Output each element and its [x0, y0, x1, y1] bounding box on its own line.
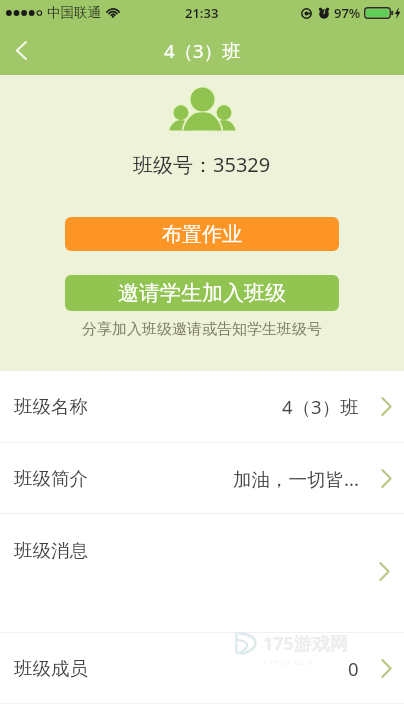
staticText: 21:33 [185, 4, 219, 22]
button[interactable]: 班级简介 [0, 443, 404, 513]
button[interactable]: 班级消息 [0, 514, 404, 632]
staticText: 4（3）班 [164, 38, 241, 63]
staticText: 175游戏网 [263, 631, 348, 656]
staticText: 97% [334, 4, 361, 22]
button[interactable]: 班级名称 [0, 371, 404, 442]
staticText: 班级简介 [14, 467, 88, 490]
staticText: 班级名称 [14, 395, 88, 418]
staticText: 中国联通 [47, 4, 101, 21]
staticText: 布置作业 [162, 222, 242, 247]
staticText: 1 7 5 y x . c o m [263, 658, 313, 668]
staticText: 邀请学生加入班级 [118, 280, 286, 306]
button[interactable]: Back [0, 25, 44, 75]
staticText: 班级消息 [14, 539, 88, 562]
staticText: 班级成员 [14, 657, 88, 680]
staticText: 班级号：35329 [133, 151, 271, 178]
button[interactable]: 布置作业 [65, 217, 339, 251]
button[interactable]: 班级成员 [0, 633, 404, 703]
button[interactable]: 邀请学生加入班级 [65, 275, 339, 311]
staticText: 加油，一切皆... [233, 466, 359, 491]
staticText: 4（3）班 [282, 394, 359, 419]
staticText: 0 [348, 656, 359, 681]
staticText: 分享加入班级邀请或告知学生班级号 [82, 320, 322, 339]
